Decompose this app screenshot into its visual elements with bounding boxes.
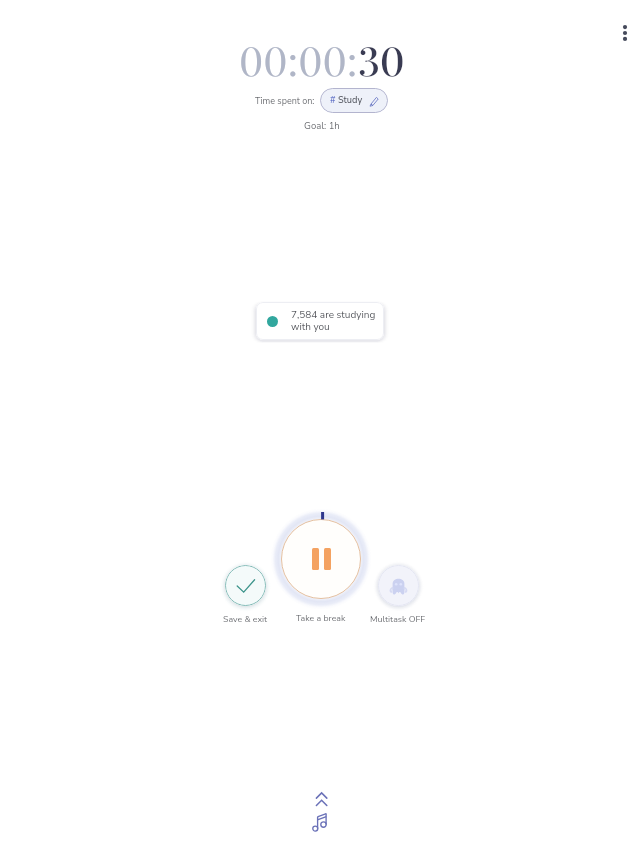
button[interactable]: Music [306, 809, 338, 837]
button[interactable]: # Study [320, 88, 388, 113]
staticText: 00:00: [239, 33, 358, 86]
button[interactable]: 7,584 are studying with you [256, 302, 384, 340]
button[interactable]: Expand [306, 787, 338, 809]
staticText: 30 [358, 33, 405, 86]
staticText: 7,584 are studying with you [291, 308, 384, 334]
staticText: Take a break [296, 612, 346, 624]
staticText: # Study [330, 94, 363, 107]
button[interactable]: Pause [273, 511, 369, 607]
staticText: Goal: 1h [304, 119, 340, 132]
staticText: Save & exit [223, 613, 268, 625]
button[interactable]: Multitask toggle [378, 565, 419, 606]
button[interactable]: Save and exit [225, 565, 266, 606]
staticText: Time spent on: [255, 95, 315, 107]
button[interactable]: More options [605, 13, 643, 53]
staticText: Multitask OFF [370, 613, 426, 625]
